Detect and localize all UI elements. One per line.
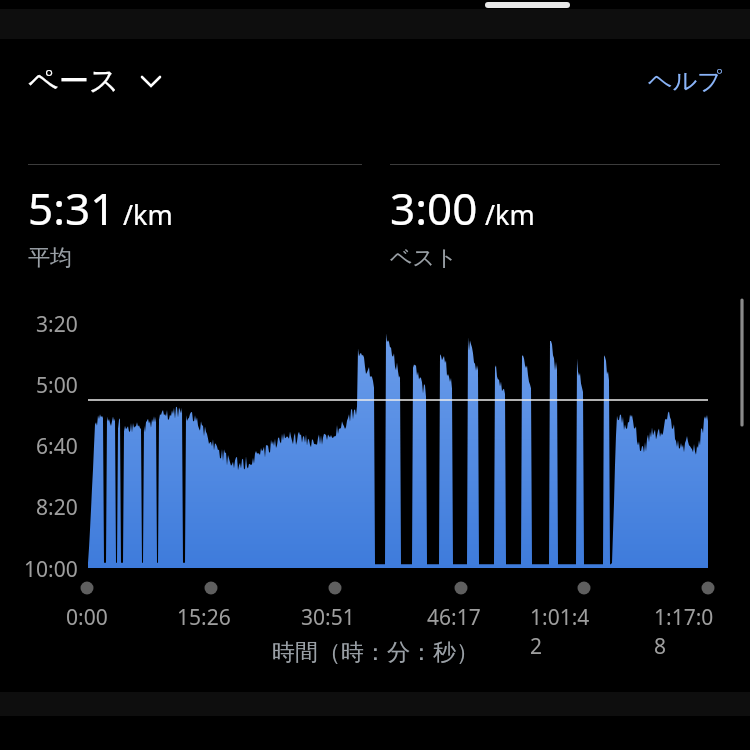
staticText: /km — [123, 196, 173, 233]
staticText: 平均 — [28, 244, 72, 272]
staticText: 6:40 — [36, 432, 78, 461]
staticText: ヘルプ — [648, 66, 722, 96]
staticText: 10:00 — [24, 555, 78, 584]
button[interactable]: ペース — [28, 62, 164, 100]
button[interactable]: ヘルプ — [648, 66, 722, 96]
staticText: 5:00 — [36, 371, 78, 400]
staticText: 1:17:08 — [654, 603, 724, 661]
staticText: 8:20 — [36, 493, 78, 522]
staticText: 時間（時：分：秒） — [272, 638, 479, 667]
staticText: 15:26 — [177, 603, 231, 632]
staticText: 3:00 — [390, 178, 478, 238]
staticText: 30:51 — [301, 603, 355, 632]
other: Change metric — [138, 68, 164, 94]
staticText: 0:00 — [66, 603, 108, 632]
staticText: ベスト — [390, 244, 458, 272]
staticText: 46:17 — [427, 603, 481, 632]
staticText: ペース — [28, 62, 120, 100]
staticText: /km — [485, 196, 535, 233]
staticText: 3:20 — [36, 310, 78, 339]
staticText: 1:01:42 — [530, 603, 600, 661]
staticText: 5:31 — [28, 178, 116, 238]
